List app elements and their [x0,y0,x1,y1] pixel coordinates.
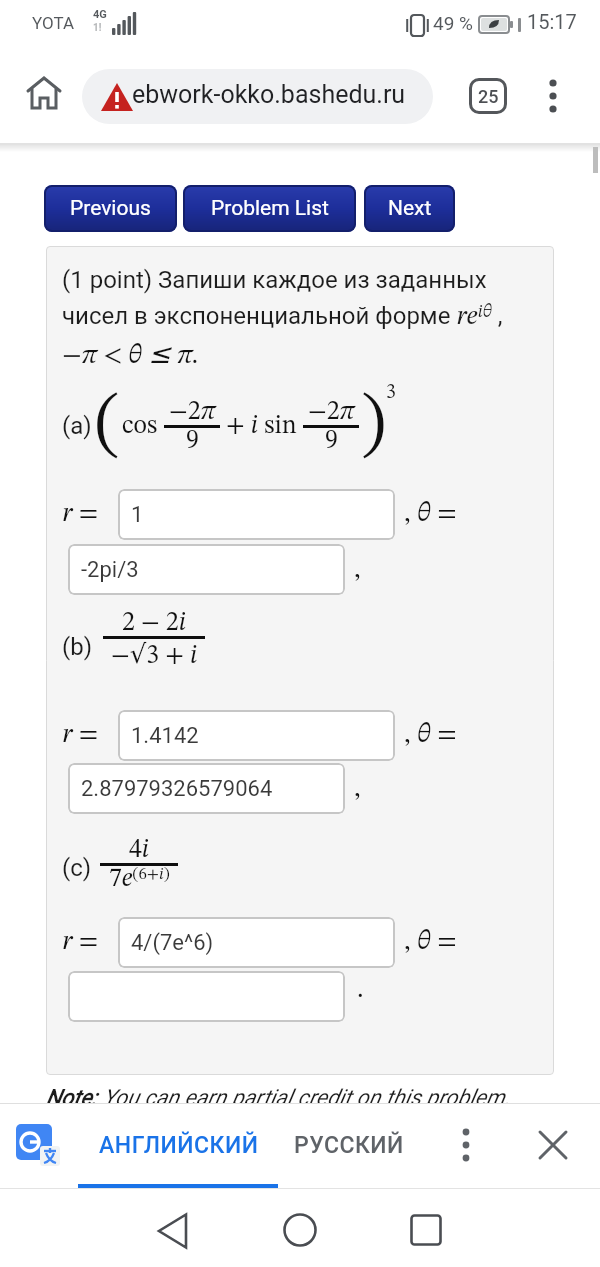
staticText: + i sin [226,413,297,439]
staticText: r = [62,500,99,527]
button[interactable]: 1 [118,489,395,540]
staticText: чисел в экспоненциальной форме reiθ , [62,302,503,331]
staticText: 2 − 2i [122,610,186,636]
staticText: 1! [93,22,102,34]
button[interactable]: 1.4142 [118,710,395,761]
button[interactable] [157,1213,189,1249]
staticText: −π < θ ≤ π. [62,338,200,369]
button[interactable] [538,1130,568,1160]
button[interactable]: АНГЛИЙСКИЙ [80,1103,278,1187]
staticText: r = [62,721,99,748]
button[interactable] [16,1122,62,1168]
button[interactable] [283,1213,317,1247]
staticText: 1 [131,502,144,528]
staticText: r = [62,928,99,955]
staticText: ) [361,390,386,462]
staticText: 7e(6+i) [109,866,170,893]
button[interactable] [410,1214,442,1246]
staticText: 9 [325,428,338,454]
staticText: (1 point) Запиши каждое из заданных [62,266,487,294]
button[interactable]: ebwork-okko.bashedu.ru [82,69,433,124]
button[interactable]: РУССКИЙ [283,1103,415,1187]
staticText: 4/(7e^6) [131,930,214,956]
staticText: , [354,775,361,802]
staticText: 2.87979326579064 [81,776,273,802]
staticText: Previous [70,196,151,221]
button[interactable]: Previous [44,185,177,232]
staticText: −2π [169,399,216,425]
button[interactable]: Problem List [183,185,356,232]
button[interactable] [546,78,560,114]
button[interactable]: 4/(7e^6) [118,917,395,968]
staticText: 9 [186,428,199,454]
staticText: −2π [308,399,355,425]
staticText: (a) [62,412,92,440]
button[interactable] [68,971,345,1022]
button[interactable]: Next [364,185,455,232]
staticText: cos [122,413,158,439]
staticText: , [354,556,361,583]
staticText: (c) [62,854,92,882]
staticText: YOTA [32,13,75,33]
staticText: -2pi/3 [81,557,139,583]
staticText: Note: [46,1085,103,1111]
button[interactable] [458,1128,474,1164]
staticText: Problem List [211,196,329,221]
staticText: 15:17 [527,10,577,33]
staticText: −√3 + i [111,639,198,669]
staticText: ebwork-okko.bashedu.ru [132,80,406,109]
button[interactable]: -2pi/3 [68,544,345,595]
button[interactable] [26,76,62,110]
staticText: 4i [129,837,150,863]
staticText: 3 [386,383,396,403]
staticText: , θ = [404,721,457,748]
staticText: ( [95,390,120,462]
staticText: , θ = [404,500,457,527]
staticText: (b) [62,633,93,661]
staticText: . [357,976,364,1003]
staticText: 1.4142 [131,723,199,749]
staticText: 25 [478,86,499,107]
button[interactable]: 2.87979326579064 [68,763,345,814]
staticText: РУССКИЙ [294,1132,404,1159]
staticText: 49 % [433,12,473,34]
button[interactable]: 25 [469,78,507,114]
staticText: You can earn partial credit on this prob… [103,1085,511,1111]
staticText: Next [388,196,432,221]
staticText: , θ = [404,928,457,955]
staticText: 4G [93,8,107,21]
staticText: АНГЛИЙСКИЙ [99,1132,259,1159]
